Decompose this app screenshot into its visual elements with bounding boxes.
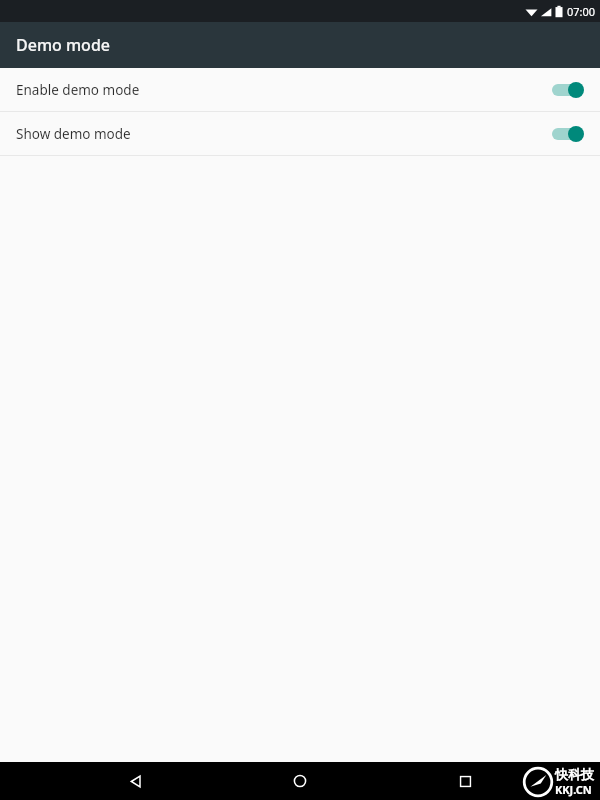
button[interactable]: Toggle (550, 79, 584, 101)
button[interactable]: Show demo mode (0, 112, 600, 155)
button[interactable]: Enable demo mode (0, 68, 600, 111)
staticText: Enable demo mode (16, 81, 550, 99)
staticText: 快科技 (555, 766, 594, 782)
staticText: Demo mode (16, 34, 111, 56)
button[interactable]: Back (105, 762, 165, 800)
button[interactable]: Home (270, 762, 330, 800)
staticText: 07:00 (567, 4, 596, 19)
button[interactable]: Toggle (550, 123, 584, 145)
staticText: KKJ.CN (555, 782, 592, 797)
staticText: Show demo mode (16, 125, 550, 143)
button[interactable]: Recent apps (435, 762, 495, 800)
